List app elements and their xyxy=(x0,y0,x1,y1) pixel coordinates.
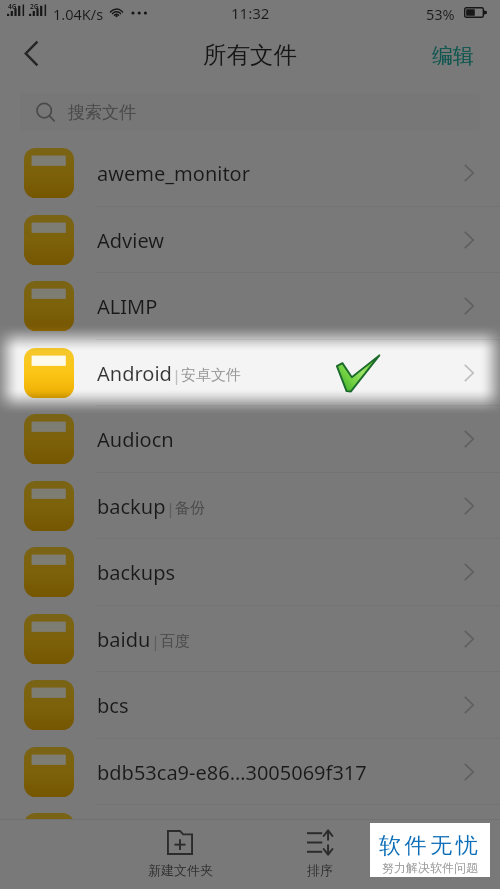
button[interactable]: Adview xyxy=(0,207,500,273)
button[interactable]: backups xyxy=(0,539,500,605)
staticText: 百度 xyxy=(160,632,190,651)
button[interactable]: backup xyxy=(0,473,500,539)
button[interactable]: aweme_monitor xyxy=(0,140,500,206)
staticText: bcs xyxy=(97,692,129,719)
staticText: 1.04K/s xyxy=(53,4,104,24)
staticText: 排序 xyxy=(307,862,333,878)
staticText: 11:32 xyxy=(231,3,270,23)
staticText: 编辑 xyxy=(432,43,474,69)
staticText: ALIMP xyxy=(97,293,158,320)
button[interactable]: 编辑 xyxy=(418,39,500,77)
staticText: aweme_monitor xyxy=(97,160,250,187)
staticText: 53% xyxy=(426,4,455,24)
button[interactable]: Android xyxy=(0,340,500,406)
button[interactable]: Audiocn xyxy=(0,406,500,472)
button[interactable]: bdb53ca9-e86…3005069f317 xyxy=(0,739,500,805)
button[interactable]: 排序 xyxy=(250,819,390,889)
staticText: 2G xyxy=(30,2,39,11)
staticText: backups xyxy=(97,559,176,586)
button[interactable]: baidu xyxy=(0,606,500,672)
staticText: Audiocn xyxy=(97,426,174,453)
staticText: 所有文件 xyxy=(203,40,297,70)
button[interactable]: 搜索文件 xyxy=(20,93,480,131)
staticText: 软件无忧 xyxy=(379,832,482,860)
button[interactable]: Back xyxy=(3,30,49,78)
staticText: 努力解决软件问题 xyxy=(382,860,478,875)
staticText: 备份 xyxy=(175,499,205,518)
button[interactable]: ALIMP xyxy=(0,273,500,339)
staticText: bdb53ca9-e86…3005069f317 xyxy=(97,759,367,786)
button[interactable]: 新建文件夹 xyxy=(110,819,250,889)
staticText: baidu xyxy=(97,626,151,653)
staticText: Adview xyxy=(97,227,164,254)
staticText: 搜索文件 xyxy=(68,102,136,123)
button[interactable]: bcs xyxy=(0,672,500,738)
staticText: Android xyxy=(97,360,172,387)
staticText: backup xyxy=(97,493,166,520)
staticText: 新建文件夹 xyxy=(148,862,213,878)
button[interactable]: bdcore xyxy=(0,805,500,871)
staticText: 4G xyxy=(8,2,17,11)
staticText: 安卓文件 xyxy=(181,366,241,385)
